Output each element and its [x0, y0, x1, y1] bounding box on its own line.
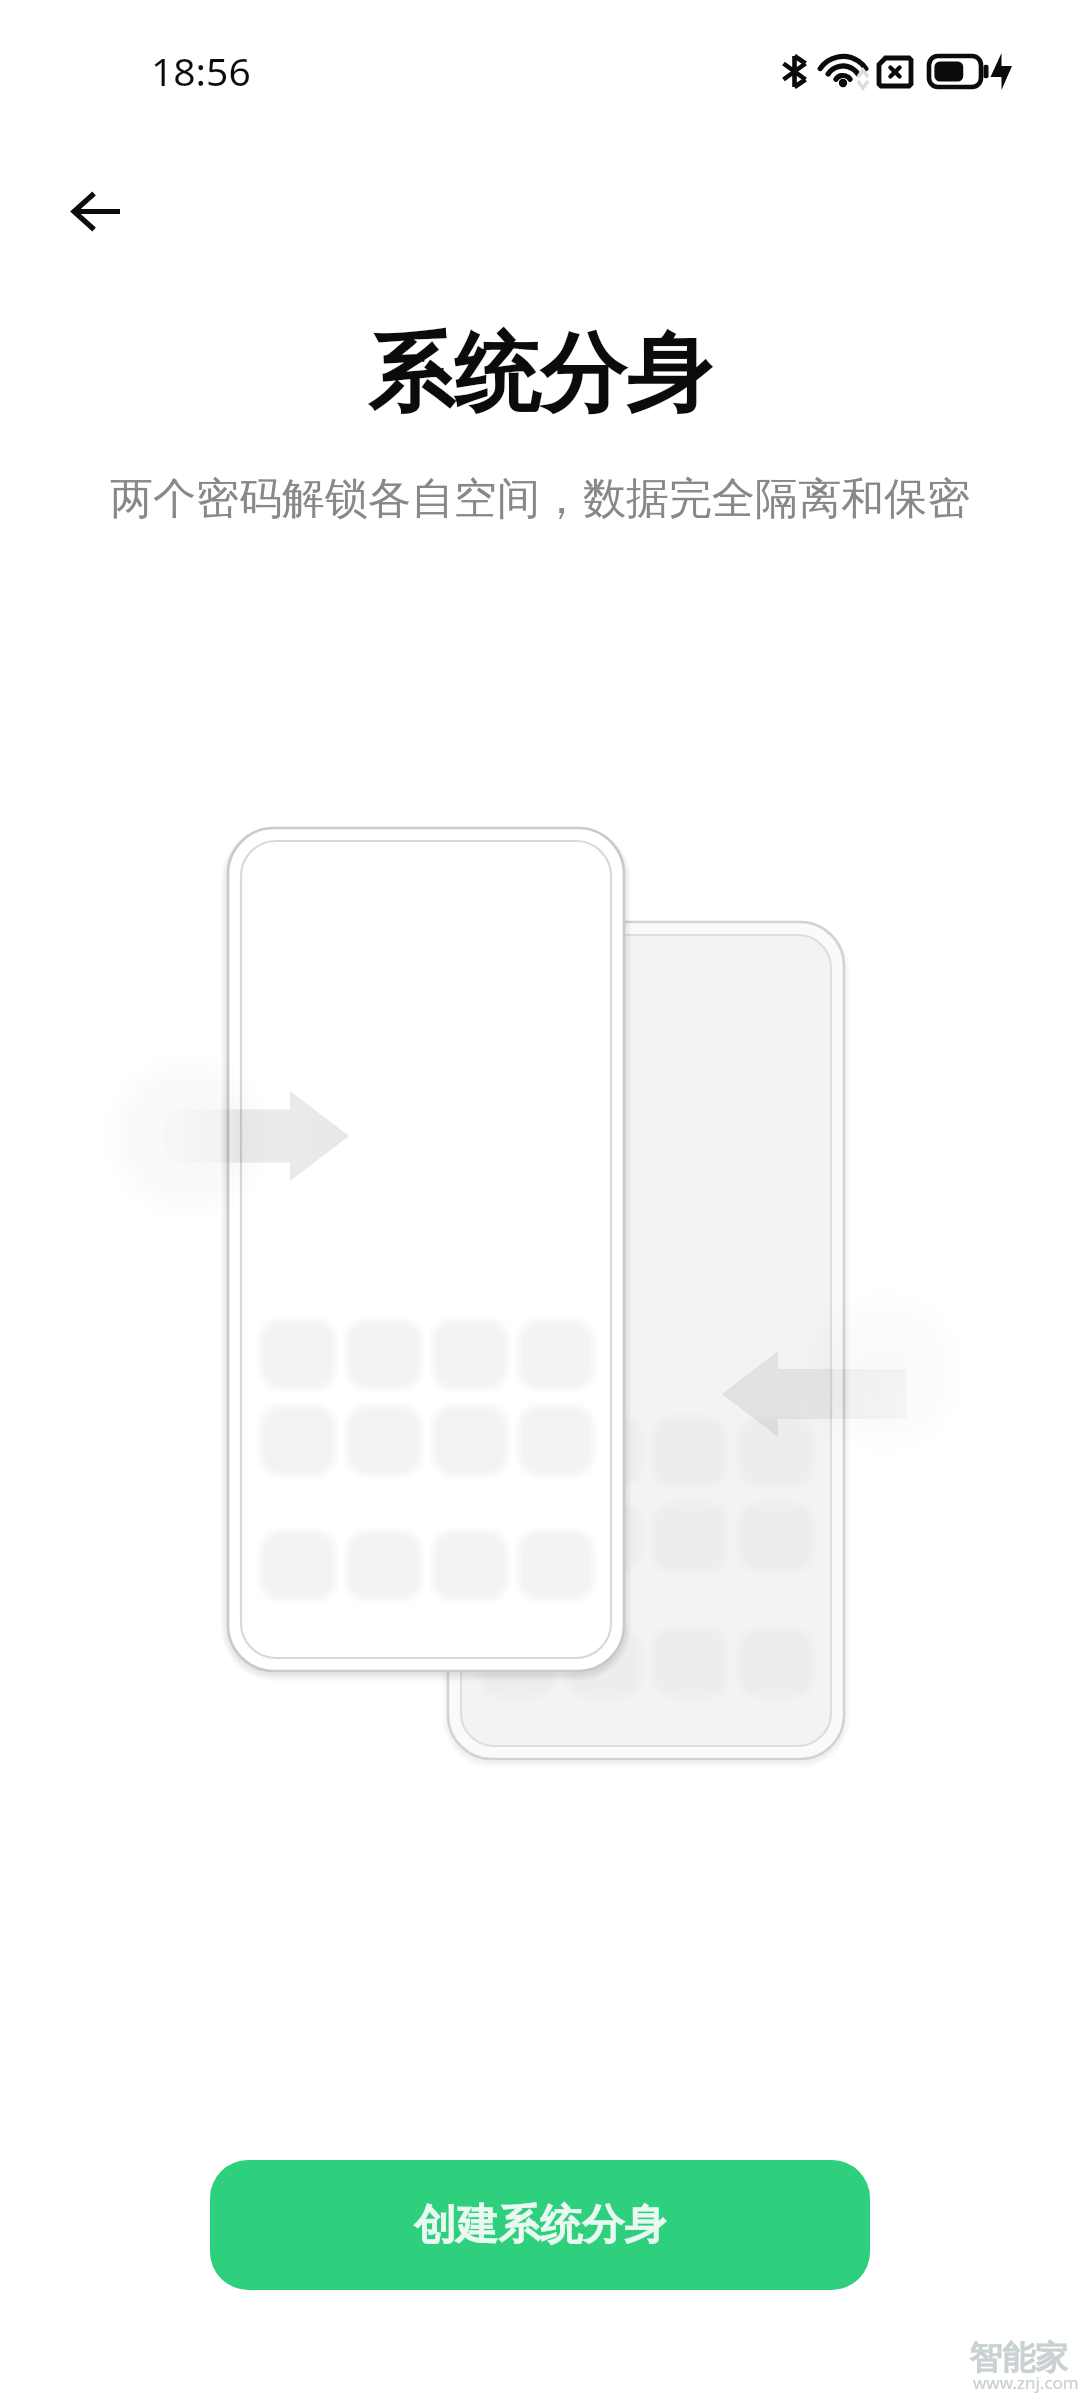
button[interactable]: 创建系统分身 — [210, 2160, 870, 2290]
staticText: 两个密码解锁各自空间，数据完全隔离和保密 — [110, 472, 970, 526]
staticText: 18:56 — [151, 44, 251, 97]
staticText: 智能家 — [969, 2337, 1068, 2379]
button[interactable]: Back — [46, 161, 146, 261]
staticText: www.znj.com — [973, 2371, 1079, 2394]
staticText: 系统分身 — [368, 320, 712, 428]
staticText: 创建系统分身 — [414, 2199, 666, 2252]
